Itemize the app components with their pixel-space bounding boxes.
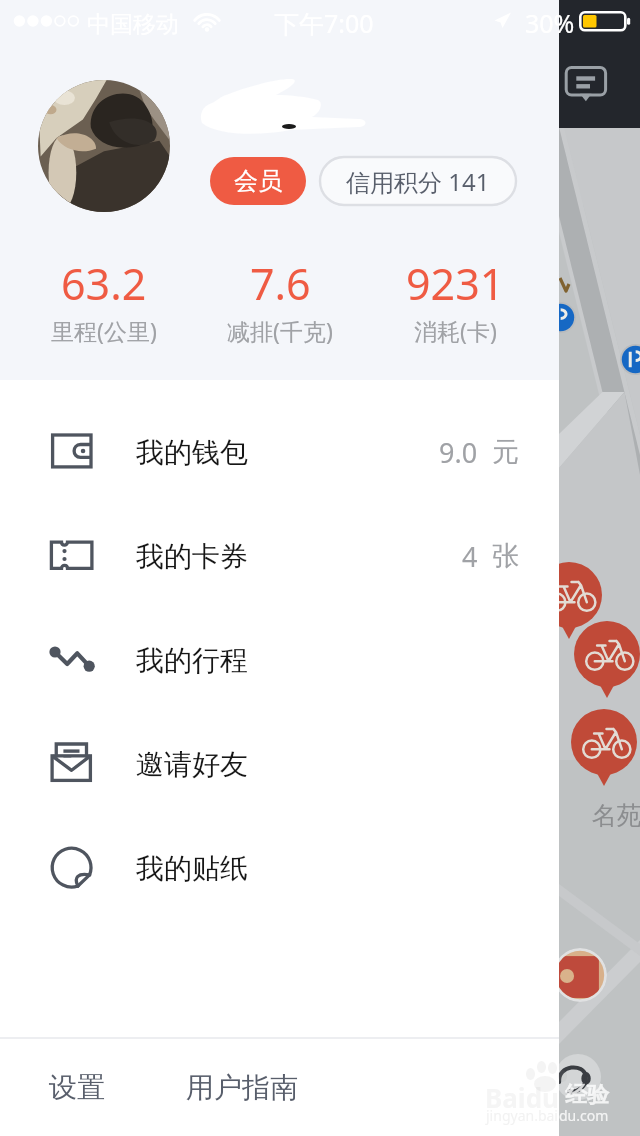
button[interactable]: Bike location xyxy=(536,562,602,640)
staticText: 信用积分 141 xyxy=(346,165,490,198)
staticText: 下午7:00 xyxy=(274,6,374,40)
staticText: Baidu xyxy=(485,1080,559,1115)
staticText: 9.0 xyxy=(439,434,478,471)
staticText: 中国移动 xyxy=(87,10,179,39)
staticText: 经验 xyxy=(565,1081,609,1109)
button[interactable]: 会员 xyxy=(210,157,306,205)
button[interactable]: 我的行程 xyxy=(0,608,559,712)
button[interactable]: My location xyxy=(553,948,607,1002)
button[interactable]: Bike location xyxy=(574,621,640,699)
staticText: 里程(公里) xyxy=(51,315,157,346)
staticText: 用户指南 xyxy=(186,1070,298,1105)
button[interactable]: 我的卡券 xyxy=(0,504,559,608)
staticText: 9231 xyxy=(406,254,505,313)
button[interactable]: Profile photo xyxy=(38,80,170,212)
staticText: 我的贴纸 xyxy=(136,851,248,886)
staticText: 我的钱包 xyxy=(136,435,248,470)
button[interactable]: 设置 xyxy=(35,1052,119,1123)
staticText: 减排(千克) xyxy=(227,315,333,346)
button[interactable]: 我的钱包 xyxy=(0,400,559,504)
button[interactable]: Parking xyxy=(620,344,640,375)
button[interactable]: 信用积分 141 xyxy=(320,157,516,205)
staticText: 4 xyxy=(462,538,478,575)
staticText: 7.6 xyxy=(250,254,311,313)
button[interactable]: 9231 xyxy=(355,254,555,346)
button[interactable]: Bike location xyxy=(571,709,637,787)
staticText: 张 xyxy=(492,539,519,573)
staticText: 30% xyxy=(525,6,575,40)
staticText: jingyan.bai xyxy=(486,1106,558,1125)
staticText: 我的行程 xyxy=(136,643,248,678)
button[interactable]: Parking xyxy=(545,302,576,333)
staticText: du.com xyxy=(559,1106,609,1125)
button[interactable]: 63.2 xyxy=(4,254,204,346)
staticText: 设置 xyxy=(49,1070,105,1105)
button[interactable]: 我的贴纸 xyxy=(0,816,559,920)
staticText: 63.2 xyxy=(61,254,147,313)
button[interactable]: Profile xyxy=(555,1054,601,1100)
button[interactable]: 邀请好友 xyxy=(0,712,559,816)
staticText: 元 xyxy=(492,435,519,469)
button[interactable]: Messages xyxy=(564,64,608,106)
staticText: 邀请好友 xyxy=(136,747,248,782)
staticText: 我的卡券 xyxy=(136,539,248,574)
staticText: 名苑 xyxy=(592,800,640,831)
button[interactable]: 用户指南 xyxy=(172,1052,312,1123)
staticText: 会员 xyxy=(234,166,282,196)
button[interactable]: 7.6 xyxy=(180,254,380,346)
staticText: 消耗(卡) xyxy=(414,315,497,346)
